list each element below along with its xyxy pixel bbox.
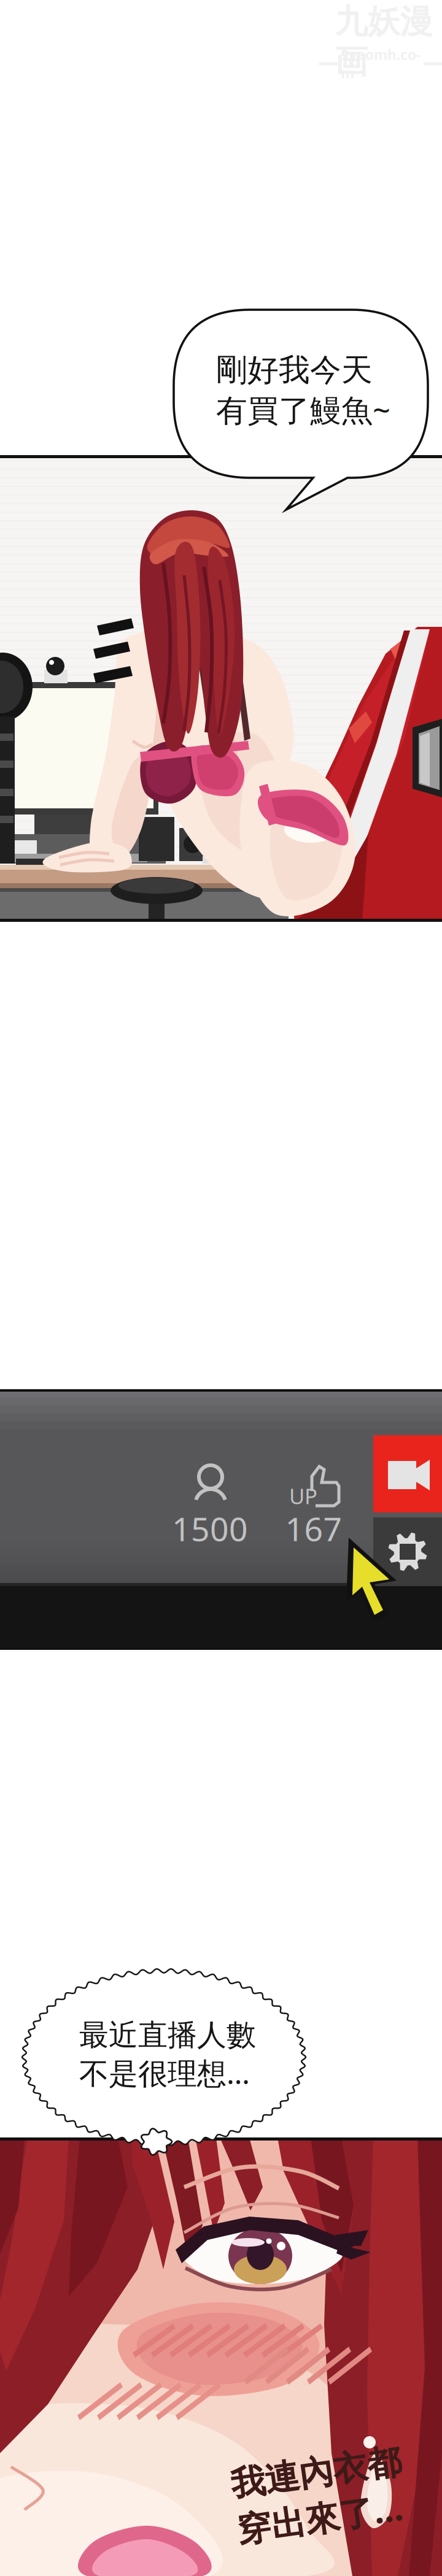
staticText: UP <box>289 1482 317 1510</box>
staticText: 167 <box>285 1507 342 1550</box>
button[interactable]: Settings <box>373 1517 442 1586</box>
button[interactable]: Camera <box>373 1435 442 1512</box>
staticText: 九妖漫画 <box>335 2 432 82</box>
staticText: 穿出來了… <box>233 2495 400 2541</box>
staticText: 剛好我今天 有買了鰻魚~ <box>216 351 390 430</box>
staticText: 1500 <box>172 1507 248 1550</box>
staticText: 我連內衣都 <box>233 2452 405 2494</box>
staticText: 最近直播人數 不是很理想… <box>79 2017 256 2092</box>
staticText: 9yaomh.com <box>341 45 421 82</box>
